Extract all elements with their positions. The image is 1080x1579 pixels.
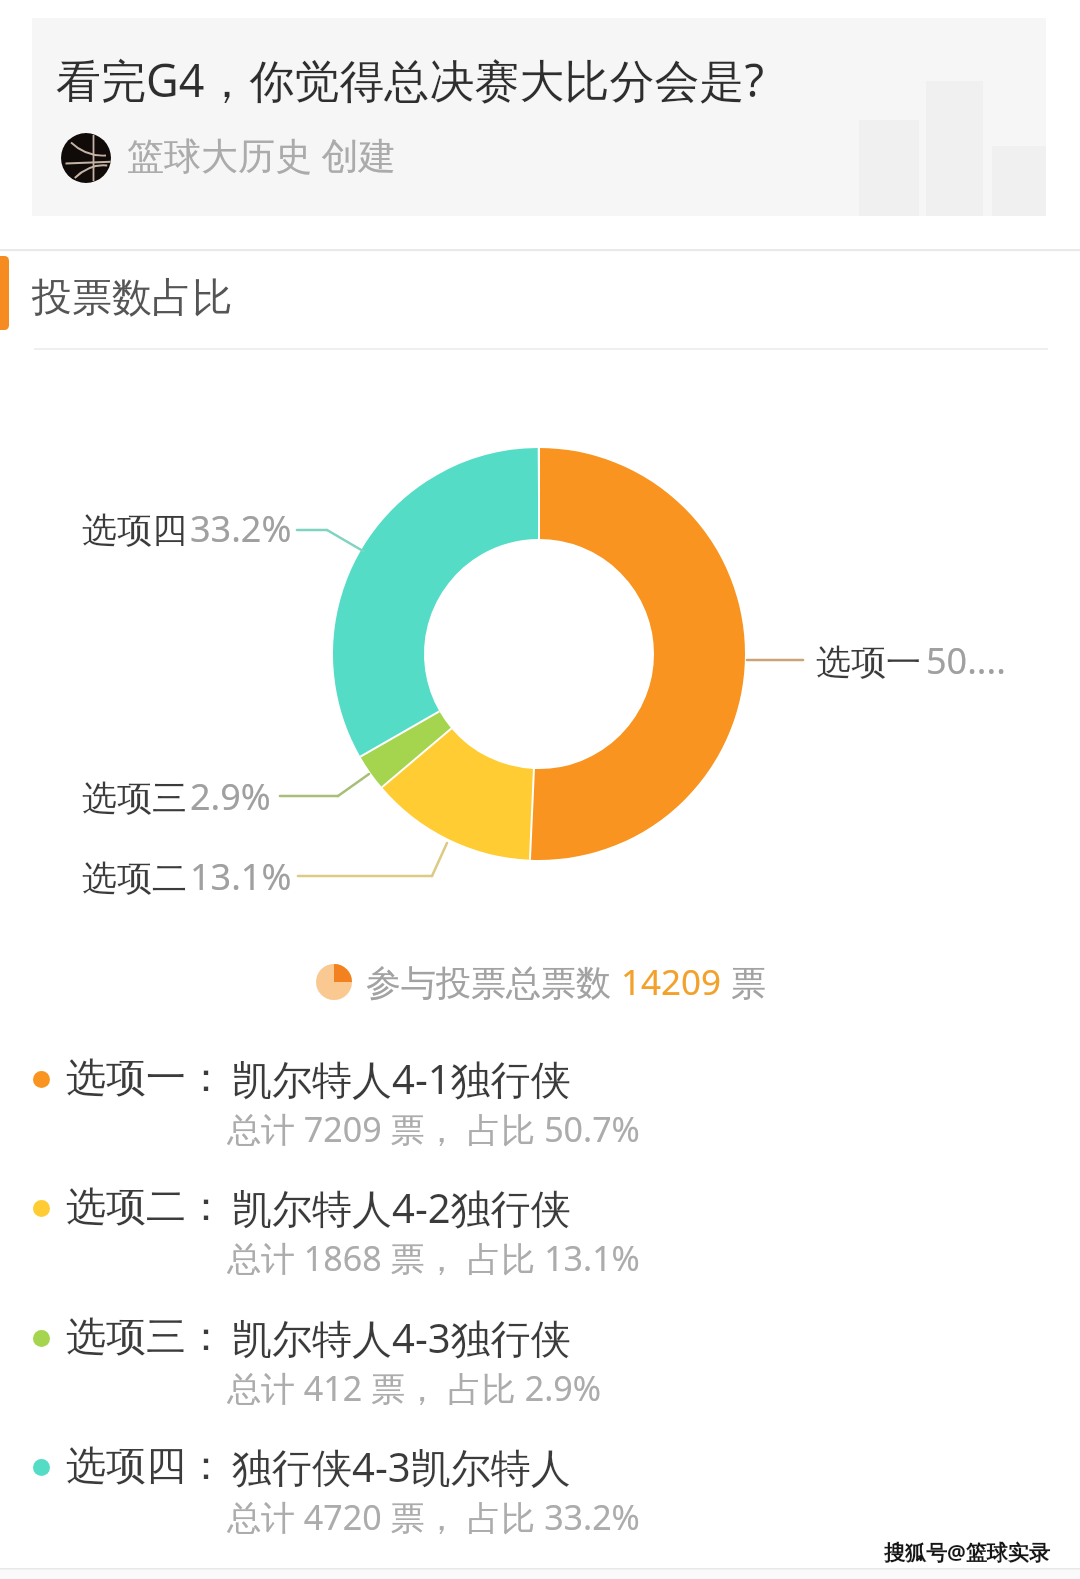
staticText: 票	[722, 958, 767, 1006]
button[interactable]: 看完G4，你觉得总决赛大比分会是?	[32, 18, 1046, 216]
staticText: 选项四	[82, 508, 187, 552]
staticText: 33.2%	[190, 504, 292, 553]
button[interactable]: 选项二：	[0, 1187, 1080, 1316]
staticText: 14209	[621, 958, 722, 1006]
button[interactable]: 参与投票总票数	[0, 958, 1080, 1006]
staticText: 选项四：	[66, 1440, 226, 1490]
staticText: 凯尔特人4-2独行侠	[232, 1180, 571, 1235]
button[interactable]: 选项四：	[0, 1446, 1080, 1575]
button[interactable]: 投票数占比环形图	[333, 448, 745, 860]
staticText: 选项一：	[66, 1052, 226, 1102]
staticText: 选项三	[82, 776, 187, 820]
staticText: 13.1%	[190, 852, 292, 901]
button[interactable]: 投票数占比	[0, 250, 1080, 348]
staticText: 总计 1868 票， 占比 13.1%	[227, 1235, 640, 1281]
staticText: 凯尔特人4-3独行侠	[232, 1310, 571, 1365]
staticText: 独行侠4-3凯尔特人	[232, 1439, 571, 1494]
staticText: 总计 4720 票， 占比 33.2%	[227, 1494, 640, 1540]
staticText: 看完G4，你觉得总决赛大比分会是?	[56, 49, 765, 110]
staticText: 参与投票总票数	[366, 958, 621, 1006]
staticText: 50....	[926, 636, 1006, 685]
staticText: 选项三：	[66, 1311, 226, 1361]
staticText: 2.9%	[190, 772, 271, 821]
staticText: 投票数占比	[32, 272, 232, 322]
staticText: 选项一	[816, 640, 921, 684]
button[interactable]: 选项三：	[0, 1317, 1080, 1446]
staticText: 总计 412 票， 占比 2.9%	[227, 1365, 601, 1411]
staticText: 选项二	[82, 856, 187, 900]
staticText: 选项二：	[66, 1181, 226, 1231]
staticText: 篮球大历史 创建	[127, 129, 396, 180]
staticText: 总计 7209 票， 占比 50.7%	[227, 1106, 640, 1152]
button[interactable]: 作者头像 篮球大历史	[61, 133, 111, 183]
staticText: 搜狐号@篮球实录	[884, 1538, 1050, 1567]
button[interactable]: 选项一：	[0, 1058, 1080, 1187]
staticText: 凯尔特人4-1独行侠	[232, 1051, 571, 1106]
